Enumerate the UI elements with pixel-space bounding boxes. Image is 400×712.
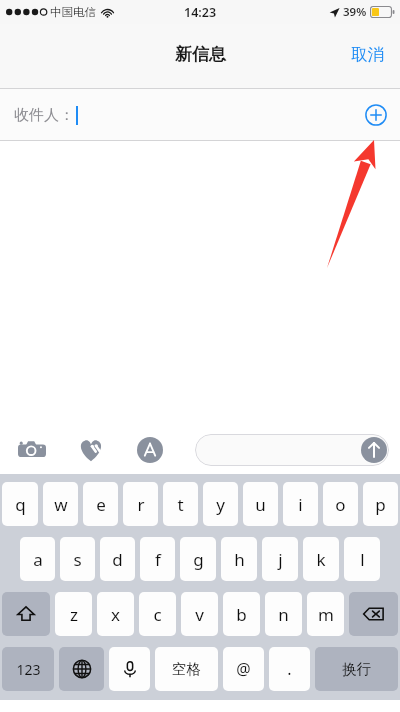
- button[interactable]: b: [223, 592, 260, 636]
- button[interactable]: a: [20, 537, 55, 581]
- button[interactable]: @: [223, 647, 264, 691]
- staticText: 中国电信: [50, 5, 96, 19]
- button[interactable]: Delete: [349, 592, 398, 636]
- button[interactable]: x: [97, 592, 134, 636]
- button[interactable]: Send: [361, 437, 387, 463]
- button[interactable]: 取消: [335, 36, 400, 73]
- button[interactable]: i: [283, 482, 318, 526]
- button[interactable]: n: [265, 592, 302, 636]
- staticText: u: [255, 493, 266, 516]
- staticText: .: [287, 658, 292, 680]
- button[interactable]: d: [100, 537, 135, 581]
- staticText: c: [153, 603, 162, 626]
- staticText: b: [236, 603, 247, 626]
- staticText: t: [177, 493, 184, 516]
- button[interactable]: Dictation: [109, 647, 150, 691]
- button[interactable]: l: [344, 537, 380, 581]
- staticText: @: [236, 658, 251, 680]
- button[interactable]: 换行: [315, 647, 398, 691]
- staticText: v: [195, 603, 204, 626]
- staticText: q: [15, 493, 26, 516]
- staticText: e: [96, 493, 106, 516]
- button[interactable]: Digital Touch: [75, 434, 107, 466]
- staticText: 取消: [351, 44, 384, 65]
- staticText: r: [137, 493, 145, 516]
- button[interactable]: k: [303, 537, 339, 581]
- staticText: j: [278, 548, 283, 571]
- staticText: h: [234, 548, 245, 571]
- staticText: l: [360, 548, 365, 571]
- button[interactable]: o: [323, 482, 358, 526]
- button[interactable]: s: [60, 537, 95, 581]
- button[interactable]: h: [221, 537, 257, 581]
- button[interactable]: Shift: [2, 592, 50, 636]
- staticText: x: [111, 603, 120, 626]
- staticText: n: [278, 603, 289, 626]
- button[interactable]: w: [43, 482, 78, 526]
- staticText: 14:23: [184, 4, 217, 21]
- staticText: k: [316, 548, 326, 571]
- button[interactable]: y: [203, 482, 238, 526]
- staticText: f: [155, 548, 161, 571]
- staticText: 123: [16, 660, 41, 679]
- staticText: g: [193, 548, 204, 571]
- staticText: 新信息: [175, 44, 226, 65]
- button[interactable]: j: [262, 537, 298, 581]
- button[interactable]: z: [55, 592, 92, 636]
- button[interactable]: 收件人：: [0, 89, 400, 141]
- button[interactable]: u: [243, 482, 278, 526]
- button[interactable]: c: [139, 592, 176, 636]
- staticText: o: [335, 493, 346, 516]
- staticText: i: [298, 493, 303, 516]
- button[interactable]: .: [269, 647, 310, 691]
- staticText: d: [112, 548, 123, 571]
- button[interactable]: Add contact: [365, 104, 387, 126]
- staticText: 换行: [342, 660, 371, 678]
- button[interactable]: Change keyboard: [59, 647, 104, 691]
- staticText: p: [375, 493, 386, 516]
- button[interactable]: g: [180, 537, 216, 581]
- button[interactable]: Camera: [16, 434, 48, 466]
- button[interactable]: r: [123, 482, 158, 526]
- button[interactable]: App Store: [134, 434, 166, 466]
- button[interactable]: f: [140, 537, 175, 581]
- button[interactable]: 123: [2, 647, 54, 691]
- staticText: z: [70, 603, 78, 626]
- button[interactable]: m: [307, 592, 344, 636]
- staticText: w: [54, 493, 68, 516]
- button[interactable]: e: [83, 482, 118, 526]
- button[interactable]: q: [2, 482, 38, 526]
- staticText: 空格: [172, 660, 201, 678]
- staticText: y: [216, 493, 225, 516]
- button[interactable]: t: [163, 482, 198, 526]
- button[interactable]: v: [181, 592, 218, 636]
- staticText: 39%: [343, 4, 367, 20]
- button[interactable]: 空格: [155, 647, 218, 691]
- button[interactable]: Send: [195, 434, 389, 466]
- staticText: 收件人：: [14, 106, 74, 125]
- button[interactable]: p: [363, 482, 398, 526]
- staticText: m: [318, 603, 334, 626]
- staticText: a: [33, 548, 43, 571]
- staticText: s: [73, 548, 82, 571]
